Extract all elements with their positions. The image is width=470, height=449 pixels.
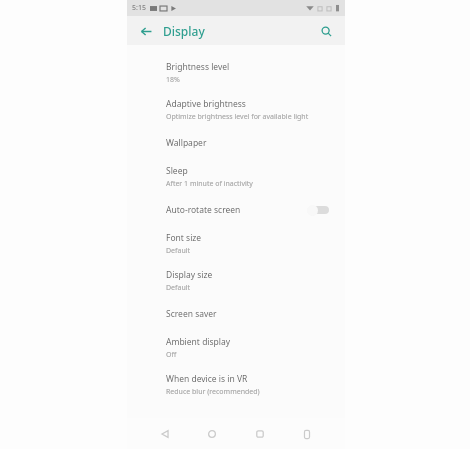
staticText: Display — [163, 23, 205, 39]
staticText: Adaptive brightness — [166, 98, 246, 110]
button[interactable]: Screen saver — [127, 299, 345, 329]
staticText: When device is in VR — [166, 373, 248, 385]
staticText: Optimize brightness level for available … — [166, 112, 309, 122]
button[interactable]: Wallpaper — [127, 128, 345, 158]
button[interactable]: Auto-rotate screen — [127, 195, 345, 225]
staticText: Wallpaper — [166, 137, 207, 149]
button[interactable]: Search — [315, 20, 337, 42]
staticText: Ambient display — [166, 336, 231, 348]
staticText: Sleep — [166, 165, 188, 177]
button[interactable]: Brightness level — [127, 54, 345, 91]
button[interactable]: Font size — [127, 225, 345, 262]
staticText: Default — [166, 283, 191, 293]
staticText: Default — [166, 246, 191, 256]
staticText: Reduce blur (recommended) — [166, 387, 260, 397]
staticText: Font size — [166, 232, 202, 244]
button[interactable]: Back — [153, 422, 177, 446]
button[interactable]: Device — [295, 422, 319, 446]
staticText: Screen saver — [166, 308, 217, 320]
button[interactable]: Ambient display — [127, 329, 345, 366]
button[interactable]: When device is in VR — [127, 366, 345, 403]
staticText: Display size — [166, 269, 213, 281]
button[interactable]: Recent apps — [248, 422, 272, 446]
staticText: Off — [166, 350, 177, 360]
staticText: 5:15 — [132, 3, 146, 13]
button[interactable]: Back — [135, 20, 157, 42]
staticText: Auto-rotate screen — [166, 204, 241, 216]
button[interactable]: Display size — [127, 262, 345, 299]
staticText: Brightness level — [166, 61, 230, 73]
button[interactable]: Home — [200, 422, 224, 446]
staticText: After 1 minute of inactivity — [166, 179, 253, 189]
button[interactable]: Auto-rotate screen toggle — [307, 202, 333, 218]
button[interactable]: Adaptive brightness — [127, 91, 345, 128]
button[interactable]: Sleep — [127, 158, 345, 195]
staticText: 18% — [166, 75, 180, 85]
